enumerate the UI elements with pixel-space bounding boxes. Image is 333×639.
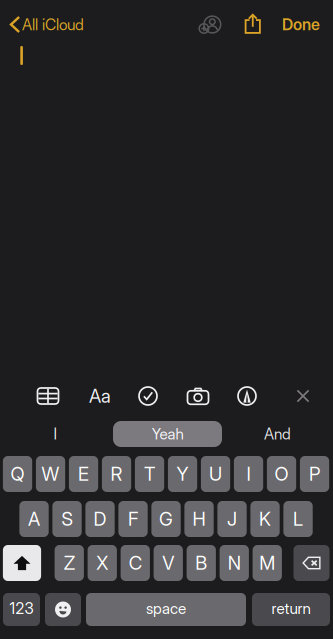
staticText: O: [274, 463, 288, 485]
button[interactable]: Done: [273, 9, 329, 39]
button[interactable]: Delete: [293, 545, 329, 581]
button[interactable]: J: [217, 501, 247, 537]
button[interactable]: I: [234, 456, 263, 492]
staticText: Yeah: [151, 425, 183, 443]
button[interactable]: V: [154, 545, 183, 581]
button[interactable]: Camera: [178, 380, 218, 412]
button[interactable]: [252, 593, 330, 626]
button[interactable]: N: [220, 545, 249, 581]
staticText: Q: [11, 463, 25, 485]
button[interactable]: M: [253, 545, 282, 581]
button[interactable]: [3, 593, 40, 626]
staticText: A: [28, 508, 40, 530]
button[interactable]: E: [69, 456, 98, 492]
staticText: Done: [282, 15, 320, 34]
button[interactable]: Y: [168, 456, 197, 492]
button[interactable]: Emoji: [45, 593, 81, 626]
button[interactable]: Yeah: [113, 421, 222, 447]
staticText: 123: [9, 599, 33, 618]
button[interactable]: F: [118, 501, 148, 537]
button[interactable]: C: [121, 545, 150, 581]
button[interactable]: X: [88, 545, 117, 581]
button[interactable]: Text format: [80, 380, 120, 412]
staticText: L: [293, 508, 303, 530]
button[interactable]: D: [85, 501, 115, 537]
staticText: Z: [64, 552, 75, 574]
staticText: U: [209, 463, 222, 485]
button[interactable]: [86, 593, 246, 626]
staticText: S: [61, 508, 72, 530]
button[interactable]: And: [222, 419, 333, 449]
staticText: J: [227, 508, 237, 530]
staticText: C: [129, 552, 142, 574]
button[interactable]: All iCloud: [9, 9, 119, 39]
button[interactable]: Shift: [3, 545, 41, 581]
button[interactable]: B: [187, 545, 216, 581]
staticText: All iCloud: [22, 15, 84, 34]
staticText: I: [247, 463, 251, 485]
button[interactable]: Note text: [0, 44, 333, 371]
button[interactable]: O: [267, 456, 296, 492]
staticText: space: [146, 599, 186, 618]
staticText: Aa: [89, 385, 111, 407]
staticText: B: [195, 552, 207, 574]
staticText: I: [53, 425, 57, 443]
staticText: F: [128, 508, 138, 530]
button[interactable]: Add People: [192, 8, 228, 40]
button[interactable]: P: [300, 456, 329, 492]
button[interactable]: G: [151, 501, 181, 537]
button[interactable]: Q: [3, 456, 32, 492]
button[interactable]: H: [184, 501, 214, 537]
staticText: G: [159, 508, 173, 530]
button[interactable]: Markup: [227, 380, 267, 412]
staticText: X: [96, 552, 108, 574]
button[interactable]: Table: [28, 380, 68, 412]
staticText: H: [193, 508, 206, 530]
button[interactable]: R: [102, 456, 131, 492]
staticText: V: [162, 552, 174, 574]
button[interactable]: Share: [236, 8, 270, 40]
staticText: R: [111, 463, 123, 485]
staticText: D: [94, 508, 107, 530]
button[interactable]: I: [0, 419, 111, 449]
staticText: W: [41, 463, 59, 485]
button[interactable]: U: [201, 456, 230, 492]
button[interactable]: A: [19, 501, 49, 537]
button[interactable]: W: [36, 456, 65, 492]
staticText: N: [228, 552, 241, 574]
button[interactable]: Close toolbar: [283, 380, 323, 412]
staticText: K: [259, 508, 271, 530]
staticText: E: [78, 463, 89, 485]
staticText: return: [271, 599, 310, 618]
staticText: Y: [177, 463, 189, 485]
button[interactable]: Z: [55, 545, 84, 581]
button[interactable]: K: [250, 501, 280, 537]
button[interactable]: S: [52, 501, 82, 537]
staticText: And: [264, 425, 291, 443]
staticText: T: [144, 463, 155, 485]
button[interactable]: L: [283, 501, 313, 537]
button[interactable]: T: [135, 456, 164, 492]
button[interactable]: Checklist: [128, 380, 168, 412]
staticText: P: [309, 463, 320, 485]
staticText: M: [259, 552, 275, 574]
